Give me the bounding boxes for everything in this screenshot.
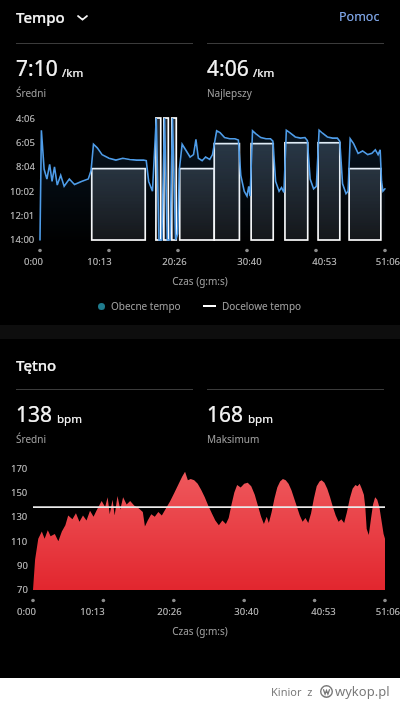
staticText: 10:13: [54, 605, 131, 618]
button[interactable]: Tempo: [0, 0, 400, 325]
staticText: 130: [11, 510, 28, 523]
staticText: Obecne tempo: [111, 299, 181, 313]
button[interactable]: Pomoc: [335, 4, 384, 29]
staticText: bpm: [57, 411, 82, 427]
staticText: 10:02: [10, 185, 35, 198]
staticText: 20:26: [131, 605, 208, 618]
staticText: 14:00: [10, 233, 35, 246]
staticText: Tempo: [16, 7, 65, 27]
staticText: bpm: [248, 411, 273, 427]
staticText: 30:40: [212, 255, 287, 268]
button[interactable]: Tempo: [16, 7, 90, 27]
staticText: 8:04: [16, 160, 35, 173]
staticText: 170: [11, 462, 28, 475]
other: Expand chart: [75, 10, 90, 25]
staticText: 30:40: [208, 605, 285, 618]
staticText: 0:00: [17, 605, 54, 618]
staticText: Pomoc: [339, 8, 380, 25]
staticText: 110: [11, 535, 28, 548]
staticText: 12:01: [10, 209, 35, 222]
staticText: 4:06: [207, 54, 249, 83]
staticText: 51:06: [362, 605, 400, 618]
staticText: wykop.pl: [335, 682, 390, 700]
button[interactable]: Tętno: [16, 355, 57, 375]
staticText: 70: [17, 583, 28, 596]
staticText: /km: [253, 65, 275, 81]
staticText: Tętno: [16, 355, 57, 375]
staticText: /km: [62, 65, 84, 81]
staticText: 40:53: [285, 605, 362, 618]
staticText: 4:06: [16, 112, 35, 125]
staticText: 51:06: [362, 255, 400, 268]
staticText: Czas (g:m:s): [0, 274, 400, 288]
staticText: Najlepszy: [207, 86, 252, 100]
staticText: 168: [207, 400, 244, 429]
button[interactable]: Tętno: [0, 339, 400, 638]
staticText: 10:13: [62, 255, 137, 268]
staticText: Kinior z: [271, 684, 313, 699]
staticText: 40:53: [287, 255, 362, 268]
staticText: 138: [16, 400, 53, 429]
staticText: 0:00: [24, 255, 62, 268]
staticText: 7:10: [16, 54, 58, 83]
staticText: 150: [11, 486, 28, 499]
staticText: 20:26: [137, 255, 212, 268]
staticText: Średni: [16, 86, 46, 100]
staticText: Docelowe tempo: [222, 299, 302, 313]
staticText: 90: [17, 559, 28, 572]
staticText: Czas (g:m:s): [0, 624, 400, 638]
staticText: Średni: [16, 432, 46, 446]
staticText: 6:05: [16, 136, 35, 149]
staticText: Maksimum: [207, 432, 260, 446]
